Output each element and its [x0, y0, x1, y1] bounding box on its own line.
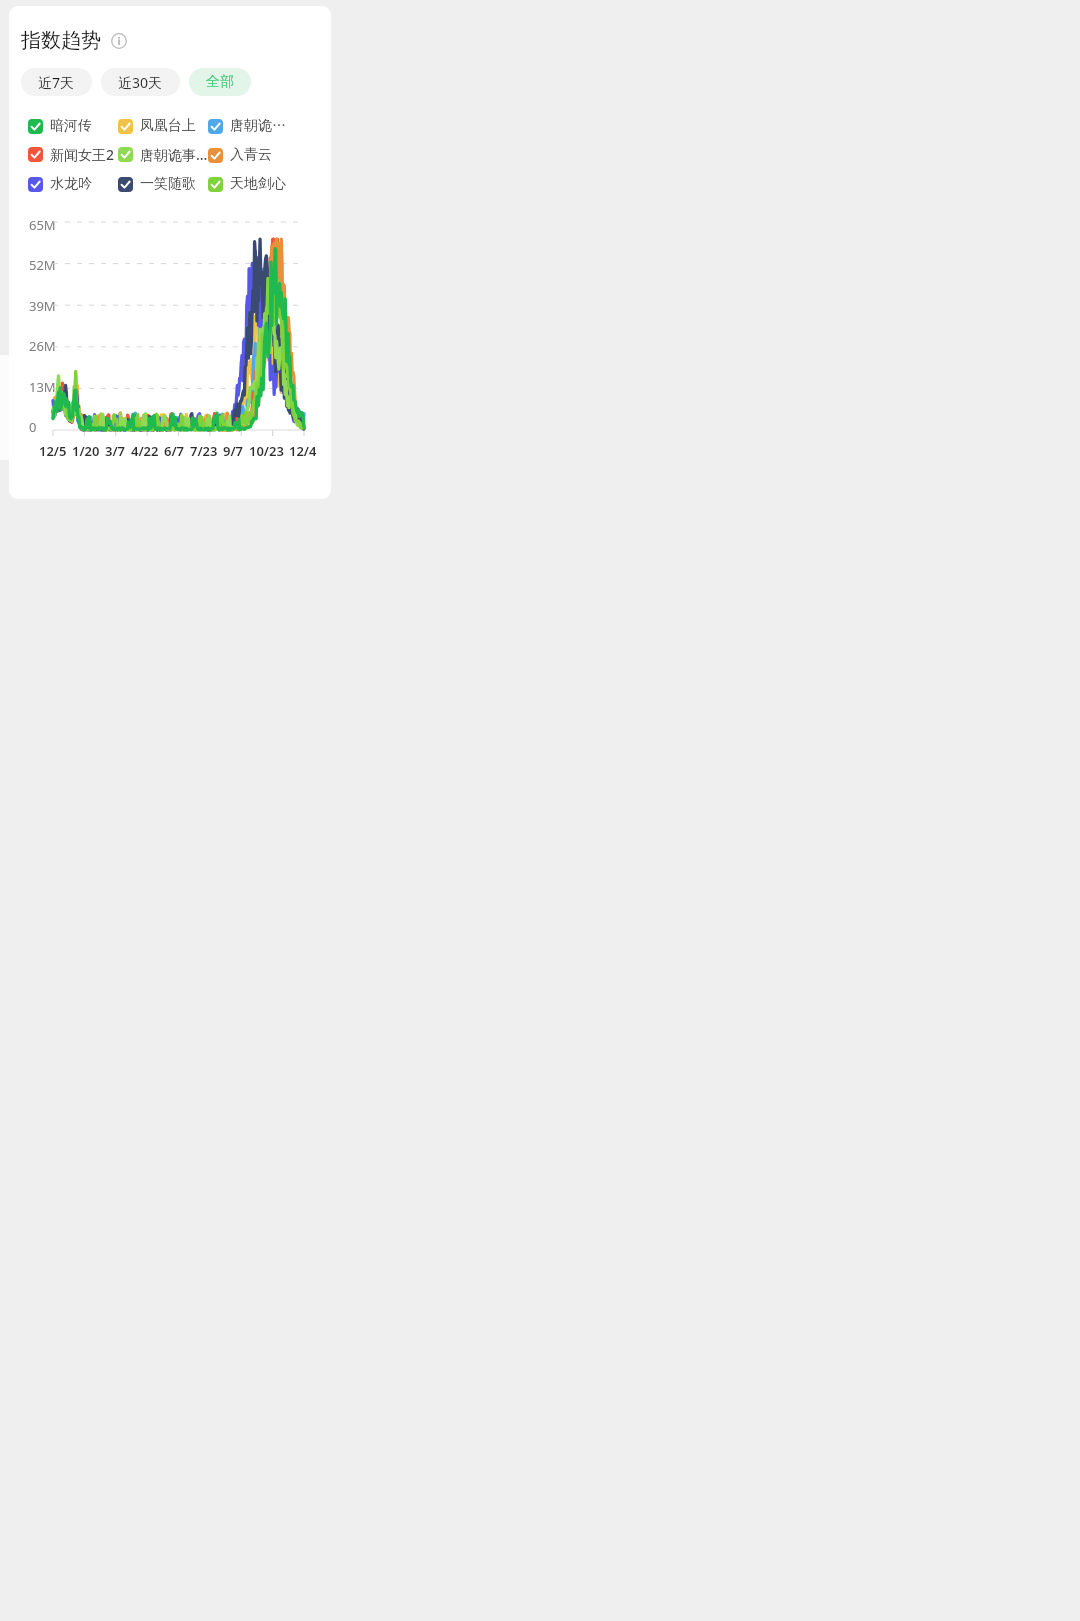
staticText: 一笑随歌 [140, 175, 196, 193]
button[interactable]: 唐朝诡事… [118, 145, 208, 164]
staticText: 1/20 [72, 442, 100, 460]
button[interactable]: 暗河传 [28, 117, 118, 135]
staticText: 10/23 [249, 442, 284, 460]
staticText: 12/5 [39, 442, 67, 460]
staticText: 天地剑心 [230, 175, 286, 193]
staticText: 唐朝诡事… [140, 145, 208, 164]
button[interactable]: 新闻女王2 [28, 145, 118, 164]
button[interactable]: 一笑随歌 [118, 175, 208, 193]
staticText: 指数趋势 [21, 28, 101, 53]
staticText: 6/7 [164, 442, 185, 460]
staticText: 65M [29, 216, 56, 234]
staticText: 暗河传 [50, 117, 92, 135]
staticText: 全部 [206, 73, 234, 91]
staticText: 新闻女王2 [50, 145, 115, 164]
staticText: 0 [29, 418, 37, 436]
staticText: 近30天 [118, 73, 163, 92]
staticText: 入青云 [230, 146, 272, 164]
staticText: 7/23 [190, 442, 218, 460]
staticText: 4/22 [131, 442, 159, 460]
staticText: 水龙吟 [50, 175, 92, 193]
button[interactable]: 唐朝诡事录 [208, 117, 298, 135]
button[interactable]: 说明 [111, 33, 127, 49]
staticText: 3/7 [105, 442, 126, 460]
staticText: 26M [29, 337, 56, 355]
staticText: 52M [29, 256, 56, 274]
staticText: 近7天 [38, 73, 75, 92]
button[interactable]: 水龙吟 [28, 175, 118, 193]
staticText: 12/4 [289, 442, 317, 460]
staticText: 9/7 [223, 442, 244, 460]
staticText: 39M [29, 297, 56, 315]
button[interactable]: 天地剑心 [208, 175, 298, 193]
button[interactable]: 近30天 [101, 68, 180, 96]
button[interactable]: 全部 [189, 68, 251, 96]
staticText: 凤凰台上 [140, 117, 196, 135]
staticText: 唐朝诡事录 [230, 117, 298, 135]
button[interactable]: 近7天 [21, 68, 92, 96]
staticText: 13M [29, 378, 56, 396]
button[interactable]: 入青云 [208, 146, 298, 164]
button[interactable]: 凤凰台上 [118, 117, 208, 135]
